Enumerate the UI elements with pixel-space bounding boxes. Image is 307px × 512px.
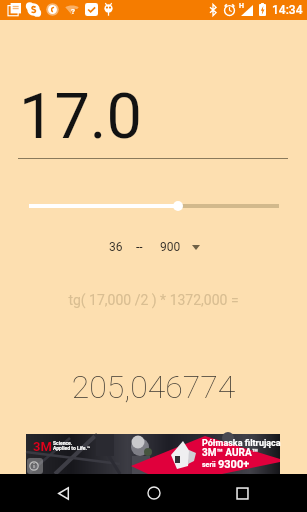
staticText: -- xyxy=(136,240,143,254)
button[interactable]: Back xyxy=(46,474,80,512)
staticText: 3M™ AURA™ xyxy=(202,447,258,459)
button[interactable]: 36 xyxy=(104,235,205,256)
staticText: tg( 17,000 /2 ) * 1372,000 = xyxy=(0,292,307,308)
button[interactable] xyxy=(0,194,307,218)
staticText: Półmaska filtrująca xyxy=(202,438,281,449)
staticText: 3M xyxy=(33,439,52,454)
staticText: ? xyxy=(71,7,75,16)
staticText: Applied to Life.™ xyxy=(53,445,91,451)
staticText: Science. xyxy=(53,440,73,446)
staticText: 14:34 xyxy=(272,3,303,17)
button[interactable]: Home xyxy=(135,474,173,512)
button[interactable]: 3M xyxy=(26,434,280,474)
staticText: 36 xyxy=(109,240,123,254)
button[interactable]: Recents xyxy=(223,474,261,512)
staticText: H xyxy=(239,2,244,10)
staticText: serii xyxy=(202,461,216,469)
staticText: 900 xyxy=(160,240,181,254)
staticText: 17.0 xyxy=(19,80,142,154)
staticText: 205,046774 xyxy=(0,368,307,406)
staticText: 9300+ xyxy=(218,458,250,471)
